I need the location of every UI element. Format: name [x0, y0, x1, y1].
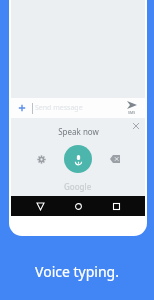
button[interactable]: Add attachment — [11, 98, 145, 118]
button[interactable]: Microphone — [64, 145, 92, 173]
staticText: Speak now — [58, 126, 99, 137]
button[interactable]: Add attachment — [15, 101, 29, 115]
button[interactable]: Settings — [32, 150, 50, 168]
button[interactable]: Close voice input — [130, 120, 142, 132]
button[interactable]: Send SMS — [121, 98, 143, 118]
button[interactable]: Back — [31, 197, 49, 215]
button[interactable]: Backspace — [106, 150, 124, 168]
button[interactable]: Home — [69, 197, 87, 215]
button[interactable]: Recent apps — [107, 197, 125, 215]
staticText: Voice typing. — [35, 262, 119, 281]
staticText: SMS — [128, 110, 136, 115]
staticText: Send message — [35, 103, 83, 113]
staticText: Google — [64, 181, 92, 192]
